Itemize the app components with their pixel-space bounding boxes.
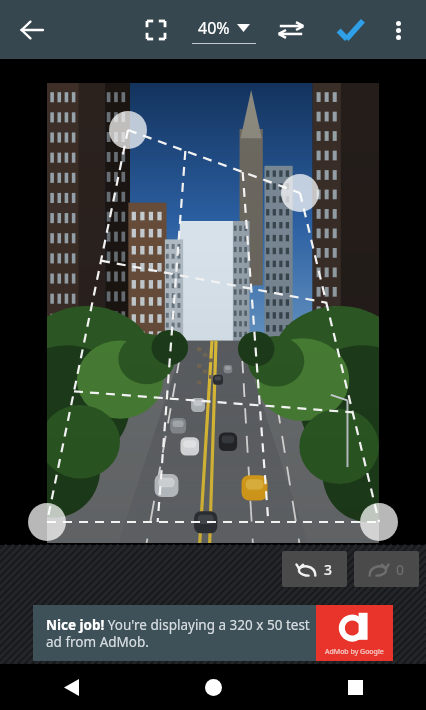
button[interactable]: Back <box>8 6 56 54</box>
button[interactable]: Nice job! You're displaying a 320 x 50 t… <box>33 605 393 661</box>
staticText: 40% <box>198 17 230 39</box>
button[interactable]: Home <box>142 664 284 710</box>
button[interactable]: More options <box>376 8 420 52</box>
button[interactable]: Flip horizontally <box>268 7 314 53</box>
staticText: 0 <box>396 560 405 579</box>
button[interactable]: Apply <box>326 6 374 54</box>
button[interactable]: Back <box>0 664 142 710</box>
staticText: Nice job! You're displaying a 320 x 50 t… <box>46 616 310 651</box>
button[interactable]: Recent apps <box>284 664 426 710</box>
staticText: 3 <box>324 560 333 579</box>
button[interactable]: 40% <box>186 7 262 53</box>
staticText: AdMob by Google <box>325 647 384 657</box>
button[interactable]: Undo <box>282 551 347 587</box>
button[interactable]: Fit to screen <box>134 8 178 52</box>
button[interactable]: Redo <box>354 551 419 587</box>
